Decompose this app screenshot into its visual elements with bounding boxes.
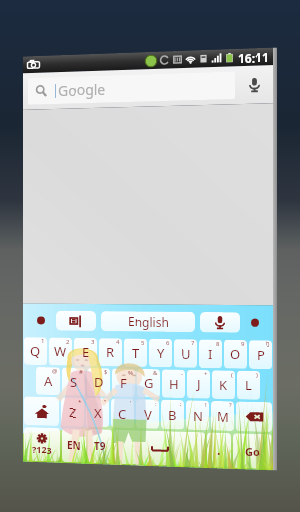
staticText: T <box>132 343 140 361</box>
button[interactable]: G <box>137 368 160 396</box>
staticText: 5 <box>141 338 145 346</box>
button[interactable]: Voice search <box>235 71 273 108</box>
button[interactable]: T <box>124 338 147 366</box>
button[interactable] <box>136 398 159 427</box>
button[interactable]: O <box>224 338 247 366</box>
staticText: I <box>208 343 213 361</box>
button[interactable]: N <box>186 398 209 427</box>
button[interactable] <box>187 368 210 396</box>
button[interactable] <box>101 311 195 331</box>
button[interactable]: Backspace <box>236 398 272 427</box>
staticText: L <box>245 373 252 391</box>
button[interactable] <box>61 398 84 427</box>
button[interactable]: D <box>87 368 110 396</box>
button[interactable]: Backspace <box>236 398 272 427</box>
staticText: % <box>128 368 133 376</box>
button[interactable]: V <box>136 398 159 427</box>
button[interactable]: P <box>249 338 272 366</box>
button[interactable]: Q <box>24 338 47 366</box>
button[interactable]: X <box>86 398 109 427</box>
staticText: C <box>118 404 127 422</box>
button[interactable] <box>111 398 134 427</box>
button[interactable]: H <box>162 368 185 396</box>
button[interactable]: Keyboard menu <box>251 317 259 325</box>
button[interactable] <box>199 338 222 366</box>
button[interactable]: L <box>237 368 260 396</box>
staticText: ? <box>229 398 232 406</box>
button[interactable] <box>88 429 112 463</box>
button[interactable]: . <box>207 429 231 463</box>
button[interactable]: R <box>99 338 122 366</box>
button[interactable] <box>212 368 235 396</box>
staticText: Google <box>58 80 106 99</box>
button[interactable]: Clipboard <box>56 311 96 331</box>
staticText: ( <box>231 368 233 376</box>
button[interactable]: A <box>36 368 60 396</box>
button[interactable]: Symbols <box>24 429 60 463</box>
button[interactable] <box>207 429 231 463</box>
staticText: Go <box>245 439 260 454</box>
button[interactable] <box>224 338 247 366</box>
button[interactable] <box>24 338 47 366</box>
button[interactable]: Voice input <box>200 311 240 331</box>
button[interactable]: W <box>49 338 72 366</box>
button[interactable]: C <box>111 398 134 427</box>
staticText: Q <box>30 343 41 361</box>
button[interactable]: Shift <box>24 398 59 427</box>
button[interactable]: Keyboard menu <box>251 317 259 325</box>
button[interactable]: Space <box>114 429 205 463</box>
staticText: + <box>204 368 208 376</box>
button[interactable] <box>149 338 172 366</box>
button[interactable] <box>87 368 110 396</box>
button[interactable] <box>162 368 185 396</box>
staticText: 9 <box>241 338 245 346</box>
button[interactable]: B <box>161 398 184 427</box>
button[interactable]: Space <box>114 429 205 463</box>
button[interactable]: Clipboard <box>56 311 96 331</box>
button[interactable]: EN <box>62 429 86 463</box>
button[interactable] <box>74 338 97 366</box>
button[interactable]: E <box>74 338 97 366</box>
button[interactable] <box>174 338 197 366</box>
button[interactable] <box>233 429 272 463</box>
button[interactable]: Google <box>28 76 235 103</box>
button[interactable]: M <box>211 398 234 427</box>
staticText: . <box>217 438 221 454</box>
button[interactable] <box>186 398 209 427</box>
button[interactable]: Y <box>149 338 172 366</box>
button[interactable] <box>62 368 85 396</box>
button[interactable]: S <box>62 368 85 396</box>
button[interactable]: Symbols <box>24 429 60 463</box>
button[interactable]: I <box>199 338 222 366</box>
button[interactable]: J <box>187 368 210 396</box>
button[interactable]: Go <box>233 429 272 463</box>
button[interactable] <box>112 368 135 396</box>
button[interactable]: U <box>174 338 197 366</box>
staticText: # <box>79 368 83 376</box>
button[interactable] <box>211 398 234 427</box>
staticText: ) <box>256 368 258 376</box>
button[interactable]: Keyboard settings <box>37 317 45 325</box>
staticText: @ <box>52 368 58 376</box>
staticText: G <box>144 373 154 391</box>
button[interactable]: T9 <box>88 429 112 463</box>
button[interactable]: F <box>112 368 135 396</box>
button[interactable]: Voice input <box>200 311 240 331</box>
button[interactable] <box>86 398 109 427</box>
button[interactable]: K <box>212 368 235 396</box>
staticText: R <box>106 343 115 361</box>
button[interactable] <box>161 398 184 427</box>
button[interactable]: Z <box>61 398 84 427</box>
button[interactable] <box>137 368 160 396</box>
button[interactable] <box>99 338 122 366</box>
button[interactable]: Shift <box>24 398 59 427</box>
button[interactable] <box>249 338 272 366</box>
button[interactable] <box>62 429 86 463</box>
staticText: $ <box>104 368 108 376</box>
button[interactable]: Keyboard settings <box>37 317 45 325</box>
button[interactable] <box>237 368 260 396</box>
button[interactable] <box>36 368 60 396</box>
button[interactable] <box>49 338 72 366</box>
button[interactable]: English <box>101 311 195 331</box>
button[interactable] <box>124 338 147 366</box>
